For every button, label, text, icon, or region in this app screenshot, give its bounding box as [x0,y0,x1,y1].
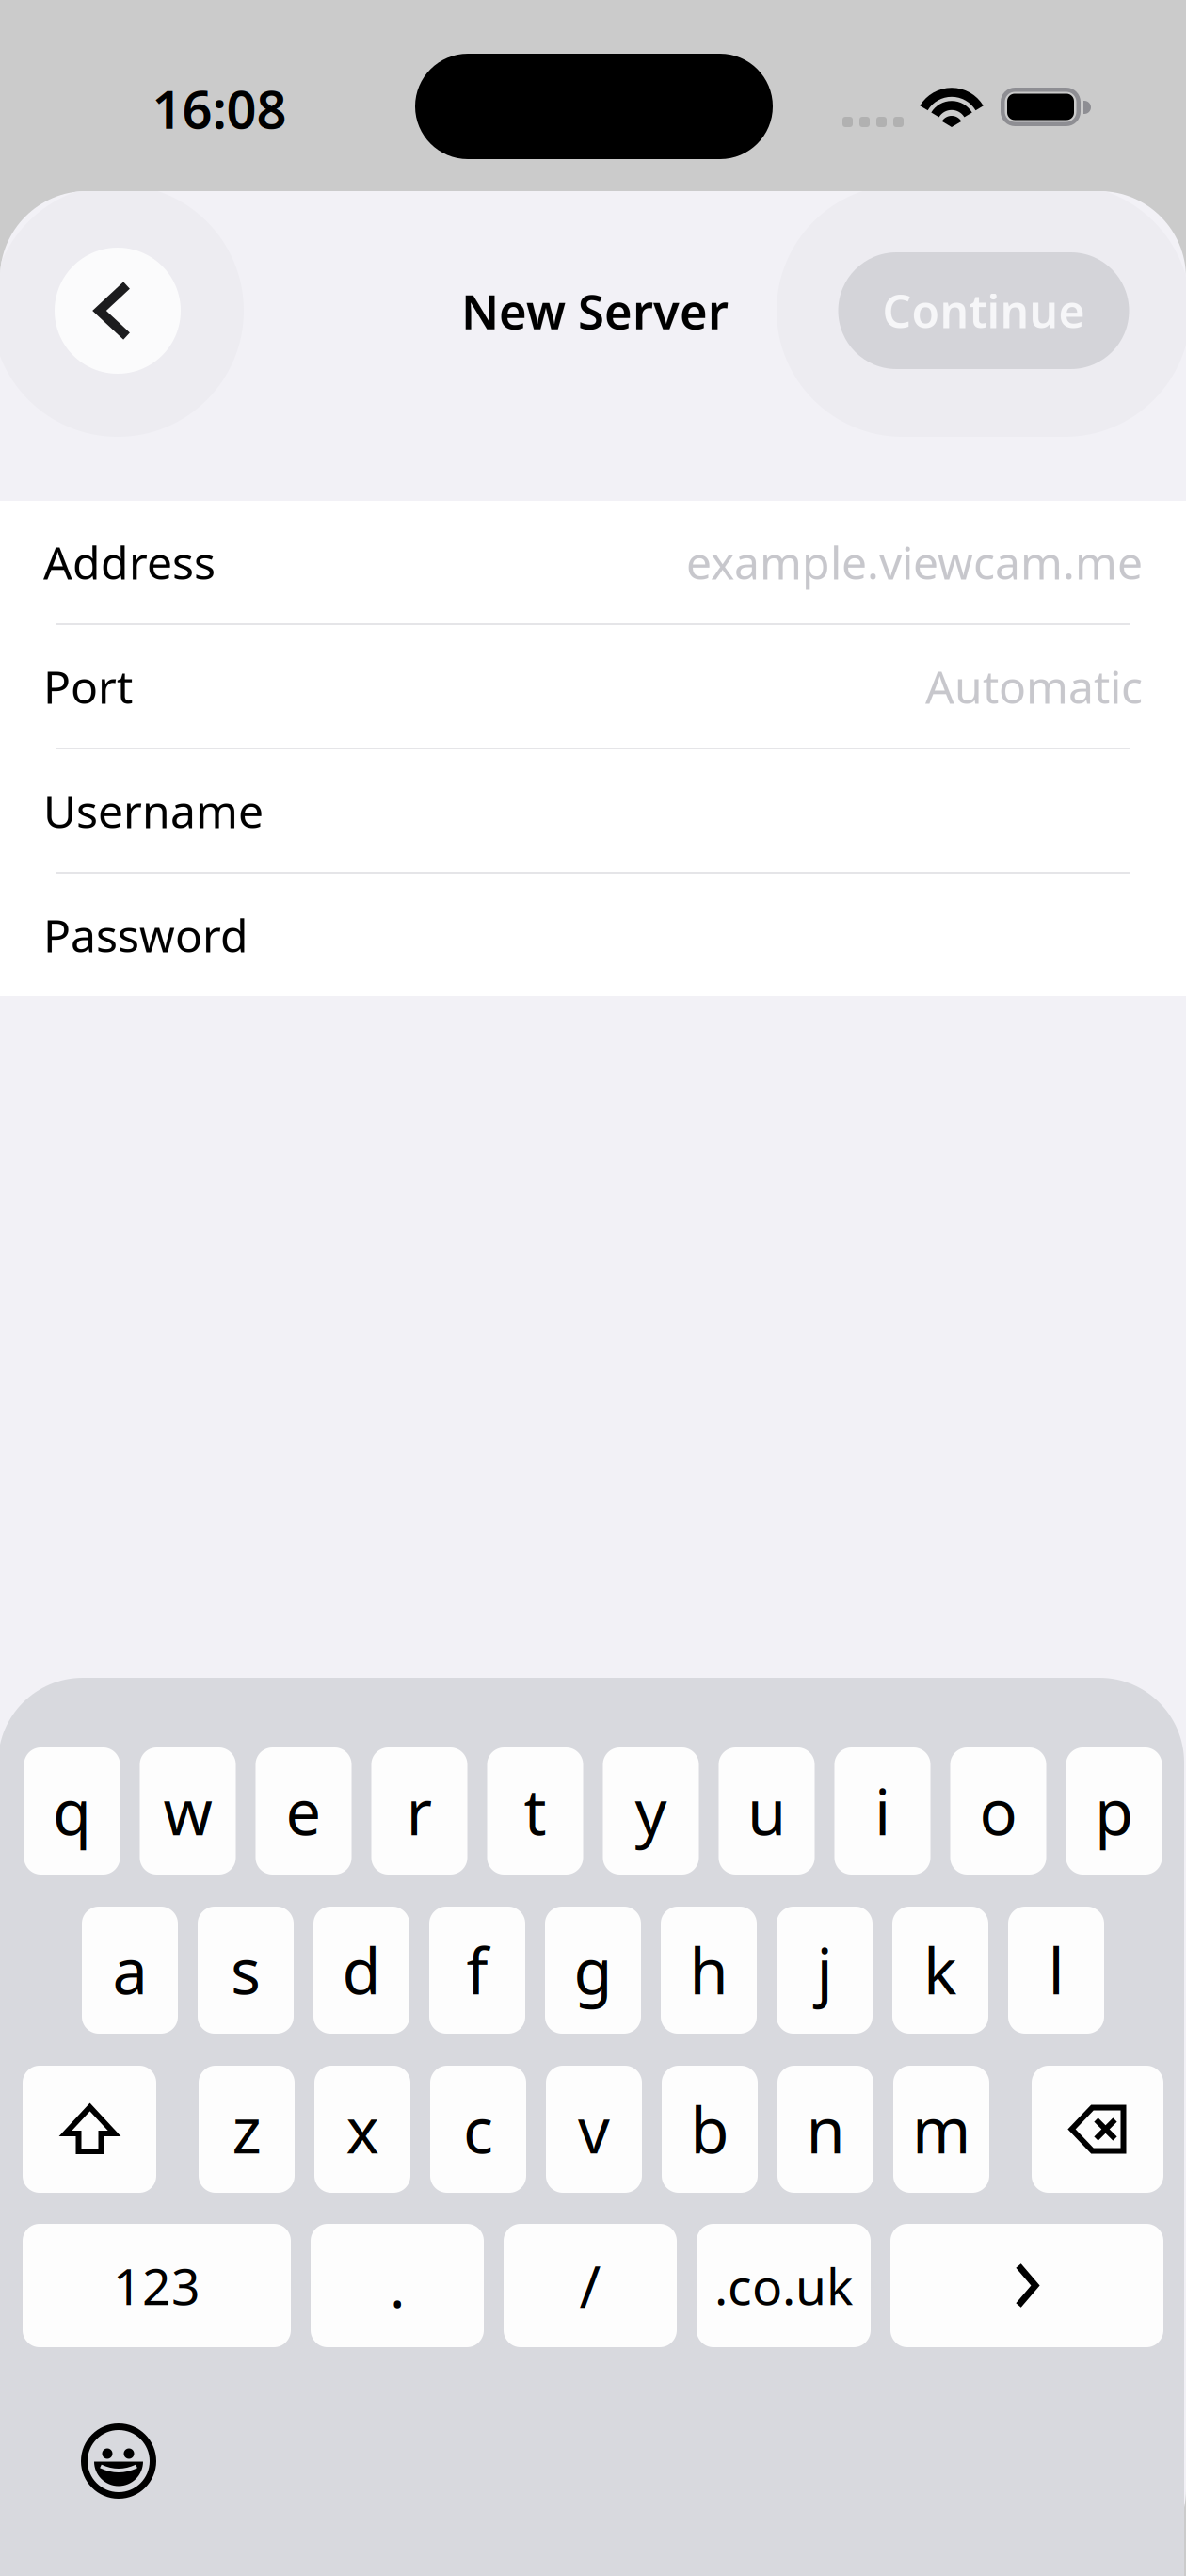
staticText: example.viewcam.me [686,532,1143,592]
staticText: m [912,2088,970,2171]
button[interactable]: .co.uk [697,2224,871,2347]
staticText: g [574,1928,612,2012]
button[interactable]: s [198,1907,294,2034]
button[interactable]: . [311,2224,484,2347]
button[interactable]: d [313,1907,409,2034]
staticText: h [689,1928,728,2012]
button[interactable]: o [950,1747,1046,1875]
staticText: p [1095,1769,1133,1853]
button[interactable]: v [546,2066,642,2193]
button[interactable]: Continue [777,185,1186,437]
staticText: / [579,2247,601,2324]
button[interactable]: Emoji keyboard [81,2423,156,2499]
staticText: b [690,2088,729,2171]
button[interactable]: t [487,1747,583,1875]
staticText: New Server [461,279,729,342]
staticText: d [342,1928,381,2012]
staticText: l [1048,1928,1064,2012]
staticText: w [163,1769,212,1853]
button[interactable]: k [892,1907,988,2034]
button[interactable]: c [430,2066,526,2193]
button[interactable]: p [1066,1747,1162,1875]
staticText: Continue [882,281,1085,341]
button[interactable]: / [504,2224,677,2347]
staticText: z [232,2088,261,2171]
staticText: i [874,1769,890,1853]
button[interactable]: u [719,1747,815,1875]
button[interactable]: l [1008,1907,1104,2034]
staticText: c [463,2088,493,2171]
button[interactable]: n [777,2066,873,2193]
button[interactable]: j [777,1907,873,2034]
staticText: Address [43,532,216,592]
button[interactable]: x [314,2066,410,2193]
button[interactable]: Shift [23,2066,156,2193]
button[interactable]: a [82,1907,178,2034]
button[interactable]: Delete [1032,2066,1163,2193]
staticText: Automatic [925,656,1143,716]
button[interactable]: Go [890,2224,1163,2347]
button[interactable]: h [661,1907,757,2034]
button[interactable]: b [662,2066,758,2193]
staticText: k [923,1928,957,2012]
button[interactable]: w [140,1747,236,1875]
staticText: s [231,1928,261,2012]
staticText: .co.uk [714,2252,853,2319]
staticText: o [979,1769,1017,1853]
staticText: q [53,1769,91,1853]
staticText: e [286,1769,321,1853]
button[interactable]: z [199,2066,295,2193]
staticText: Password [43,905,248,965]
staticText: a [112,1928,147,2012]
staticText: Username [43,781,264,841]
staticText: x [346,2088,379,2171]
button[interactable]: Back [0,185,244,437]
staticText: j [817,1928,833,2012]
staticText: 123 [113,2252,200,2319]
button[interactable]: i [834,1747,930,1875]
staticText: v [578,2088,610,2171]
staticText: . [390,2247,405,2324]
staticText: y [635,1769,667,1853]
button[interactable]: q [24,1747,120,1875]
button[interactable]: 123 [23,2224,291,2347]
button[interactable]: f [429,1907,525,2034]
staticText: r [406,1769,433,1853]
staticText: f [466,1928,488,2012]
button[interactable]: y [603,1747,699,1875]
button[interactable]: g [545,1907,641,2034]
staticText: Port [43,656,133,716]
staticText: n [806,2088,845,2171]
staticText: 16:08 [152,73,287,143]
button[interactable]: r [371,1747,467,1875]
staticText: u [747,1769,786,1853]
button[interactable]: m [893,2066,989,2193]
button[interactable]: e [256,1747,352,1875]
staticText: t [524,1769,546,1853]
